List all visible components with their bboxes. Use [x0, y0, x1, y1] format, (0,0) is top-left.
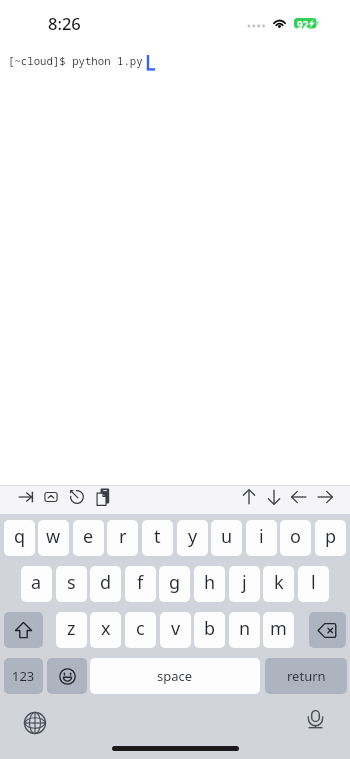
button[interactable]: Emoji [47, 658, 87, 694]
button[interactable]: f [125, 566, 156, 602]
button[interactable]: p [315, 520, 346, 556]
button[interactable]: y [177, 520, 208, 556]
staticText: r [119, 524, 127, 549]
button[interactable]: v [160, 612, 191, 648]
button[interactable]: Tab [13, 486, 39, 514]
staticText: o [290, 524, 301, 549]
button[interactable]: l [298, 566, 329, 602]
staticText: y [188, 524, 198, 549]
button[interactable]: z [56, 612, 87, 648]
staticText: b [204, 616, 216, 641]
staticText: p [325, 524, 337, 549]
staticText: a [31, 570, 42, 595]
button[interactable]: q [4, 520, 35, 556]
button[interactable]: space [90, 658, 260, 694]
button[interactable]: x [90, 612, 121, 648]
button[interactable]: s [56, 566, 87, 602]
button[interactable]: Arrow up [236, 486, 262, 514]
button[interactable]: h [194, 566, 225, 602]
button[interactable]: Shift [4, 612, 43, 648]
button[interactable]: u [211, 520, 242, 556]
button[interactable]: r [107, 520, 138, 556]
button[interactable]: d [90, 566, 121, 602]
staticText: f [137, 570, 144, 595]
staticText: t [154, 524, 161, 549]
staticText: u [221, 524, 233, 549]
staticText: l [311, 570, 316, 595]
staticText: return [287, 667, 326, 685]
staticText: h [204, 570, 216, 595]
staticText: e [83, 524, 94, 549]
button[interactable]: e [73, 520, 104, 556]
button[interactable]: g [159, 566, 190, 602]
staticText: c [136, 616, 145, 641]
button[interactable]: Control [38, 486, 64, 514]
button[interactable]: Arrow left [286, 486, 312, 514]
staticText: q [14, 524, 26, 549]
staticText: j [242, 570, 247, 595]
staticText: 92 [297, 18, 309, 32]
staticText: v [171, 616, 181, 641]
staticText: m [270, 616, 287, 641]
button[interactable]: j [229, 566, 260, 602]
staticText: x [101, 616, 111, 641]
button[interactable]: Change keyboard [22, 710, 47, 735]
staticText: d [100, 570, 112, 595]
staticText: w [46, 524, 61, 549]
button[interactable]: c [125, 612, 156, 648]
button[interactable]: n [229, 612, 260, 648]
button[interactable]: i [246, 520, 277, 556]
staticText: 123 [12, 667, 35, 685]
button[interactable]: t [142, 520, 173, 556]
button[interactable]: a [21, 566, 52, 602]
button[interactable]: w [38, 520, 69, 556]
button[interactable]: Arrow down [261, 486, 287, 514]
staticText: z [67, 616, 76, 641]
staticText: i [259, 524, 264, 549]
button[interactable]: Dictate [303, 707, 328, 732]
button[interactable]: k [263, 566, 294, 602]
button[interactable]: o [280, 520, 311, 556]
button[interactable]: 123 [4, 658, 43, 694]
button[interactable]: Paste [89, 486, 115, 514]
staticText: 8:26 [48, 12, 81, 34]
staticText: [~cloud]$ python 1.py [8, 54, 143, 69]
staticText: n [239, 616, 251, 641]
button[interactable]: m [263, 612, 294, 648]
button[interactable]: return [265, 658, 347, 694]
staticText: g [169, 570, 181, 595]
staticText: space [157, 667, 193, 685]
button[interactable]: Backspace [309, 612, 346, 648]
staticText: k [274, 570, 284, 595]
button[interactable]: b [194, 612, 225, 648]
button[interactable]: Arrow right [312, 486, 338, 514]
staticText: s [67, 570, 76, 595]
button[interactable]: History [64, 486, 90, 514]
